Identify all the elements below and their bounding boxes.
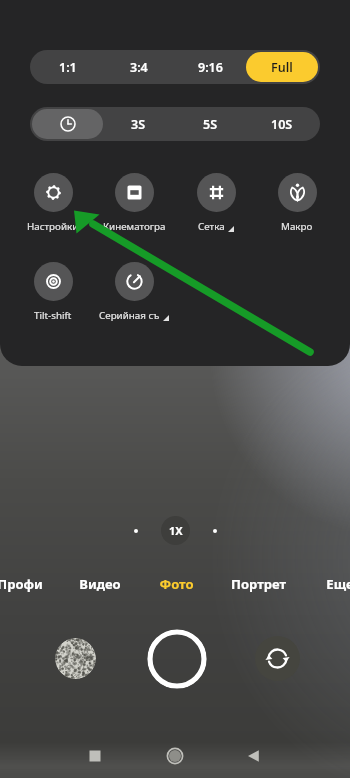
staticText: 9:16: [198, 59, 223, 76]
button[interactable]: 9:16: [174, 52, 246, 82]
button[interactable]: Макро: [242, 173, 350, 233]
button[interactable]: Сетка: [161, 173, 271, 233]
staticText: Фото: [159, 575, 194, 593]
button[interactable]: Full: [246, 52, 318, 82]
staticText: Настройки: [27, 220, 79, 233]
button[interactable]: 1X: [161, 516, 190, 545]
button[interactable]: 1:1: [32, 52, 103, 82]
button[interactable]: Switch camera: [255, 636, 300, 681]
button[interactable]: Timer off: [32, 109, 103, 139]
staticText: 5S: [203, 116, 218, 133]
staticText: Макро: [281, 220, 313, 233]
staticText: Сетка: [198, 220, 225, 233]
button[interactable]: Shutter: [147, 629, 207, 689]
button[interactable]: Серийная съ: [79, 262, 189, 322]
staticText: 1:1: [59, 59, 77, 76]
staticText: 3S: [131, 116, 146, 133]
staticText: Tilt-shift: [34, 309, 72, 322]
button[interactable]: 10S: [246, 109, 318, 139]
button[interactable]: Gallery: [55, 638, 96, 679]
staticText: Кинематогра: [103, 220, 166, 233]
button[interactable]: Видео: [60, 571, 140, 597]
button[interactable]: Home: [160, 741, 190, 771]
button[interactable]: Портрет: [218, 571, 298, 597]
button[interactable]: 3:4: [103, 52, 174, 82]
staticText: Full: [271, 59, 293, 76]
button[interactable]: Настройки: [0, 173, 108, 233]
button[interactable]: Еще: [300, 571, 350, 597]
button[interactable]: Back: [239, 741, 269, 771]
staticText: 3:4: [130, 59, 148, 76]
button[interactable]: Кинематогра: [79, 173, 189, 233]
button[interactable]: 5S: [174, 109, 246, 139]
staticText: Портрет: [231, 575, 286, 593]
button[interactable]: Фото: [136, 571, 216, 597]
button[interactable]: 3S: [103, 109, 174, 139]
button[interactable]: Профи: [0, 571, 60, 597]
staticText: Видео: [79, 575, 121, 593]
staticText: 1X: [169, 523, 183, 538]
button[interactable]: Tilt-shift: [0, 262, 108, 322]
staticText: Серийная съ: [99, 309, 160, 322]
button[interactable]: Recents: [80, 741, 110, 771]
staticText: Профи: [0, 575, 43, 593]
staticText: 10S: [271, 116, 293, 133]
staticText: Еще: [326, 575, 350, 593]
